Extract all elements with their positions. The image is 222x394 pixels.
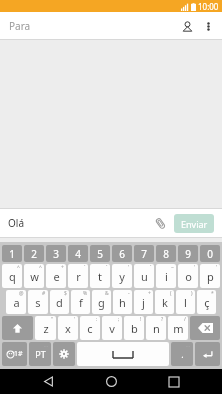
staticText: #	[42, 290, 46, 297]
button[interactable]: 8	[156, 245, 176, 262]
button[interactable]: x	[58, 316, 78, 340]
button[interactable]: Symbols	[2, 342, 27, 366]
staticText: !	[140, 316, 142, 323]
staticText: `	[150, 264, 152, 271]
button[interactable]: 7	[134, 245, 154, 262]
staticText: 1#	[14, 349, 23, 359]
staticText: '	[74, 316, 76, 323]
button[interactable]: g	[92, 290, 111, 314]
button[interactable]: o	[178, 264, 198, 288]
button[interactable]: ç	[197, 290, 216, 314]
staticText: s	[35, 295, 41, 310]
staticText: b	[131, 321, 138, 336]
staticText: @	[19, 290, 24, 297]
button[interactable]: y	[112, 264, 132, 288]
button[interactable]: a	[6, 290, 26, 314]
staticText: Olá	[8, 216, 150, 230]
button[interactable]: Back	[33, 369, 63, 394]
button[interactable]: h	[113, 290, 132, 314]
button[interactable]: Attach	[150, 213, 170, 233]
staticText: a	[13, 295, 20, 310]
button[interactable]: Enter	[195, 342, 220, 366]
staticText: &	[105, 290, 109, 297]
button[interactable]: Backspace	[190, 316, 220, 340]
staticText: d	[56, 295, 63, 310]
staticText: ç	[204, 295, 210, 310]
button[interactable]: p	[200, 264, 220, 288]
button[interactable]: Space	[77, 342, 169, 366]
button[interactable]: Recents	[159, 369, 189, 394]
staticText: v	[109, 321, 115, 336]
button[interactable]: Home	[96, 369, 126, 394]
button[interactable]: t	[90, 264, 110, 288]
staticText: r	[76, 269, 81, 284]
button[interactable]: m	[168, 316, 188, 340]
button[interactable]: l	[176, 290, 195, 314]
button[interactable]: 1	[2, 245, 22, 262]
staticText: `	[106, 264, 108, 271]
button[interactable]: c	[80, 316, 100, 340]
button[interactable]: k	[155, 290, 174, 314]
button[interactable]: j	[134, 290, 153, 314]
staticText: ?	[161, 316, 164, 323]
button[interactable]: Shift	[2, 316, 33, 340]
button[interactable]: 5	[90, 245, 110, 262]
staticText: z	[43, 321, 49, 336]
staticText: x	[65, 321, 71, 336]
button[interactable]: Enviar	[174, 214, 214, 233]
staticText: o	[185, 269, 192, 284]
staticText: q	[9, 269, 16, 284]
staticText: 7	[141, 247, 147, 261]
staticText: Enviar	[181, 218, 208, 230]
staticText: +	[61, 264, 64, 271]
button[interactable]: 4	[68, 245, 88, 262]
staticText: k	[162, 295, 168, 310]
staticText: ^	[17, 264, 20, 271]
button[interactable]: s	[28, 290, 48, 314]
button[interactable]: u	[134, 264, 154, 288]
staticText: 8	[163, 247, 169, 261]
button[interactable]: b	[124, 316, 144, 340]
button[interactable]: w	[24, 264, 44, 288]
staticText: l	[184, 295, 187, 310]
staticText: 3	[53, 247, 59, 261]
staticText: 10:00	[198, 1, 219, 12]
button[interactable]: Contacts	[176, 15, 198, 37]
button[interactable]: r	[68, 264, 88, 288]
staticText: e	[53, 269, 60, 284]
staticText: '	[194, 264, 196, 271]
button[interactable]: v	[102, 316, 122, 340]
button[interactable]: 0	[200, 245, 220, 262]
button[interactable]: 9	[178, 245, 198, 262]
button[interactable]: 6	[112, 245, 132, 262]
button[interactable]: Settings	[53, 342, 75, 366]
staticText: Para	[9, 19, 31, 33]
button[interactable]: 2	[24, 245, 44, 262]
button[interactable]: f	[71, 290, 90, 314]
staticText: +	[148, 290, 151, 297]
staticText: w	[30, 269, 39, 284]
button[interactable]: 3	[46, 245, 66, 262]
staticText: j	[142, 295, 145, 310]
staticText: g	[98, 295, 105, 310]
button[interactable]: d	[50, 290, 69, 314]
staticText: /	[184, 316, 186, 323]
button[interactable]: .	[171, 342, 193, 366]
staticText: PT	[35, 348, 46, 360]
button[interactable]: e	[46, 264, 66, 288]
staticText: t	[98, 269, 102, 284]
button[interactable]: PT	[29, 342, 51, 366]
staticText: ^	[39, 264, 42, 271]
button[interactable]: q	[2, 264, 22, 288]
button[interactable]: z	[35, 316, 56, 340]
staticText: 0	[207, 247, 213, 261]
staticText: '	[128, 264, 130, 271]
button[interactable]: i	[156, 264, 176, 288]
staticText: 5	[97, 247, 103, 261]
button[interactable]: More options	[198, 16, 218, 36]
staticText: n	[153, 321, 160, 336]
button[interactable]: n	[146, 316, 166, 340]
staticText: %	[83, 290, 88, 297]
staticText: -	[128, 290, 130, 297]
